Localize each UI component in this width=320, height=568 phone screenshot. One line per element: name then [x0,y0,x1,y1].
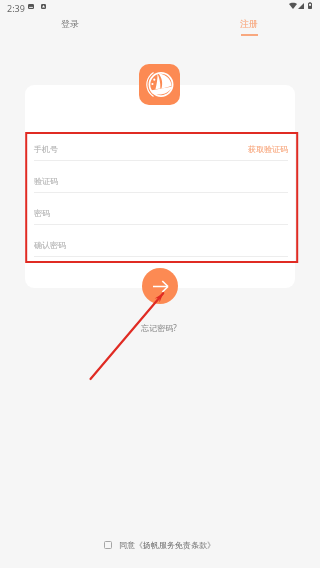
button[interactable]: 同意《扬帆服务免责条款》 [104,540,215,550]
button[interactable]: 提交注册 [142,268,178,304]
button[interactable]: 密码 [34,197,288,229]
staticText: 手机号 [34,144,58,154]
button[interactable]: 登录 [50,12,90,34]
button[interactable]: 注册 [229,12,269,34]
staticText: 获取验证码 [248,144,288,154]
staticText: 确认密码 [34,240,66,250]
staticText: 2:39 [7,2,25,14]
staticText: 登录 [61,18,79,29]
staticText: 密码 [34,208,50,218]
staticText: 同意《扬帆服务免责条款》 [119,540,215,550]
staticText: 验证码 [34,176,58,186]
button[interactable]: 确认密码 [34,229,288,261]
button[interactable]: 验证码 [34,165,288,197]
staticText: 忘记密码? [0,322,319,333]
button[interactable]: 手机号 [34,133,288,165]
staticText: 注册 [240,18,258,29]
